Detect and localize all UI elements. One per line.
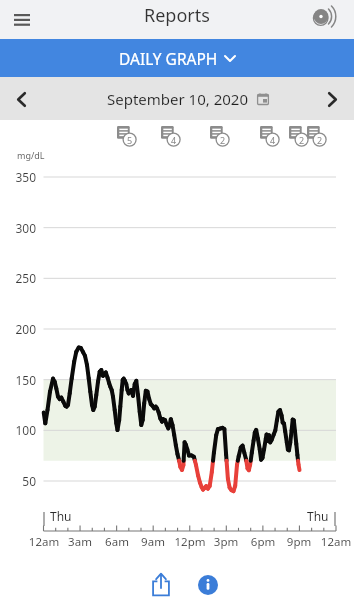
staticText: 6pm: [238, 534, 288, 550]
button[interactable]: DAILY GRAPH: [0, 39, 354, 77]
staticText: Reports: [144, 3, 210, 28]
staticText: 350: [0, 169, 36, 185]
staticText: 2: [317, 134, 323, 146]
button[interactable]: Share: [143, 566, 179, 600]
button[interactable]: Sensor status: [308, 0, 340, 32]
staticText: 100: [0, 422, 36, 438]
button[interactable]: 5 notes: [117, 126, 138, 147]
staticText: 3am: [55, 534, 105, 550]
staticText: 50: [0, 473, 36, 489]
button[interactable]: 2 notes: [289, 126, 310, 147]
staticText: 4: [171, 134, 177, 146]
button[interactable]: 4 notes: [260, 126, 281, 147]
staticText: Thu: [50, 508, 72, 524]
button[interactable]: 2 notes: [210, 126, 231, 147]
staticText: 150: [0, 372, 36, 388]
staticText: 2: [220, 134, 226, 146]
staticText: Thu: [307, 508, 329, 524]
button[interactable]: September 10, 2020: [107, 89, 269, 109]
staticText: 12am: [19, 534, 69, 550]
staticText: 12am: [311, 534, 354, 550]
staticText: 6am: [92, 534, 142, 550]
staticText: September 10, 2020: [107, 89, 249, 109]
button[interactable]: Menu: [6, 3, 38, 35]
staticText: mg/dL: [17, 149, 45, 161]
staticText: 250: [0, 270, 36, 286]
staticText: 4: [270, 134, 276, 146]
staticText: 3pm: [201, 534, 251, 550]
button[interactable]: Next day: [314, 81, 350, 117]
button[interactable]: Previous day: [3, 81, 39, 117]
staticText: 9pm: [274, 534, 324, 550]
button[interactable]: 4 notes: [161, 126, 182, 147]
button[interactable]: Info: [190, 567, 226, 600]
staticText: 5: [127, 134, 133, 146]
staticText: 200: [0, 321, 36, 337]
staticText: 9am: [128, 534, 178, 550]
staticText: 2: [299, 134, 305, 146]
staticText: DAILY GRAPH: [119, 48, 218, 69]
staticText: 300: [0, 220, 36, 236]
button[interactable]: 2 notes: [307, 126, 328, 147]
staticText: 12pm: [165, 534, 215, 550]
